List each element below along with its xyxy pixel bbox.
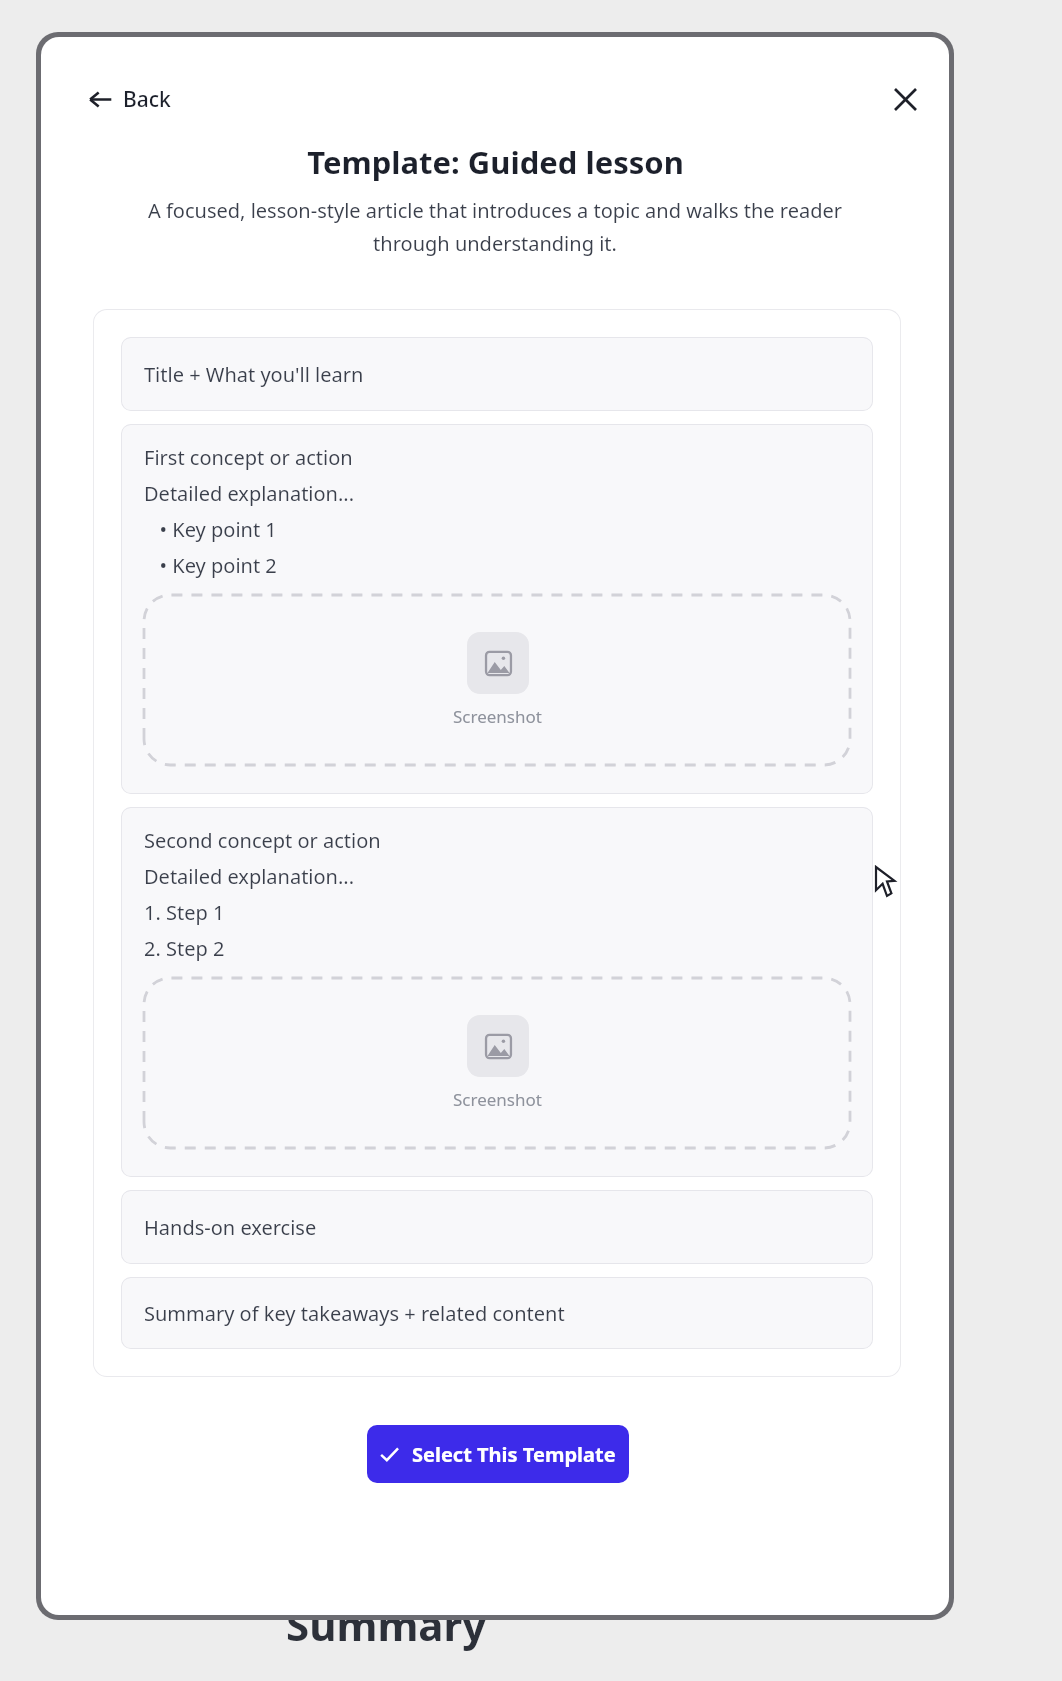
staticText: Second concept or action (144, 827, 381, 854)
button[interactable]: Second concept or action (121, 807, 873, 1177)
staticText: First concept or action (144, 444, 353, 471)
button[interactable]: Title + What you'll learn (121, 337, 873, 411)
staticText: • Key point 2 (144, 552, 277, 579)
staticText: Title + What you'll learn (144, 361, 364, 388)
staticText: Screenshot (453, 1088, 542, 1111)
staticText: Select This Template (412, 1441, 616, 1468)
button[interactable]: Close (881, 75, 929, 123)
button[interactable]: First concept or action (121, 424, 873, 794)
staticText: A focused, lesson-style article that int… (111, 197, 879, 257)
staticText: Back (123, 85, 171, 114)
staticText: Detailed explanation... (144, 863, 355, 890)
staticText: Detailed explanation... (144, 480, 355, 507)
staticText: Summary (286, 1596, 487, 1653)
button[interactable]: Summary of key takeaways + related conte… (121, 1277, 873, 1349)
staticText: 1. Step 1 (144, 899, 225, 926)
staticText: Template: Guided lesson (307, 141, 684, 183)
button[interactable]: Select This Template (367, 1425, 629, 1483)
staticText: • Key point 1 (144, 516, 277, 543)
button[interactable]: Back (83, 79, 177, 120)
staticText: Hands-on exercise (144, 1214, 317, 1241)
staticText: 2. Step 2 (144, 935, 225, 962)
button[interactable]: Hands-on exercise (121, 1190, 873, 1264)
staticText: Screenshot (453, 705, 542, 728)
staticText: Summary of key takeaways + related conte… (144, 1300, 565, 1327)
